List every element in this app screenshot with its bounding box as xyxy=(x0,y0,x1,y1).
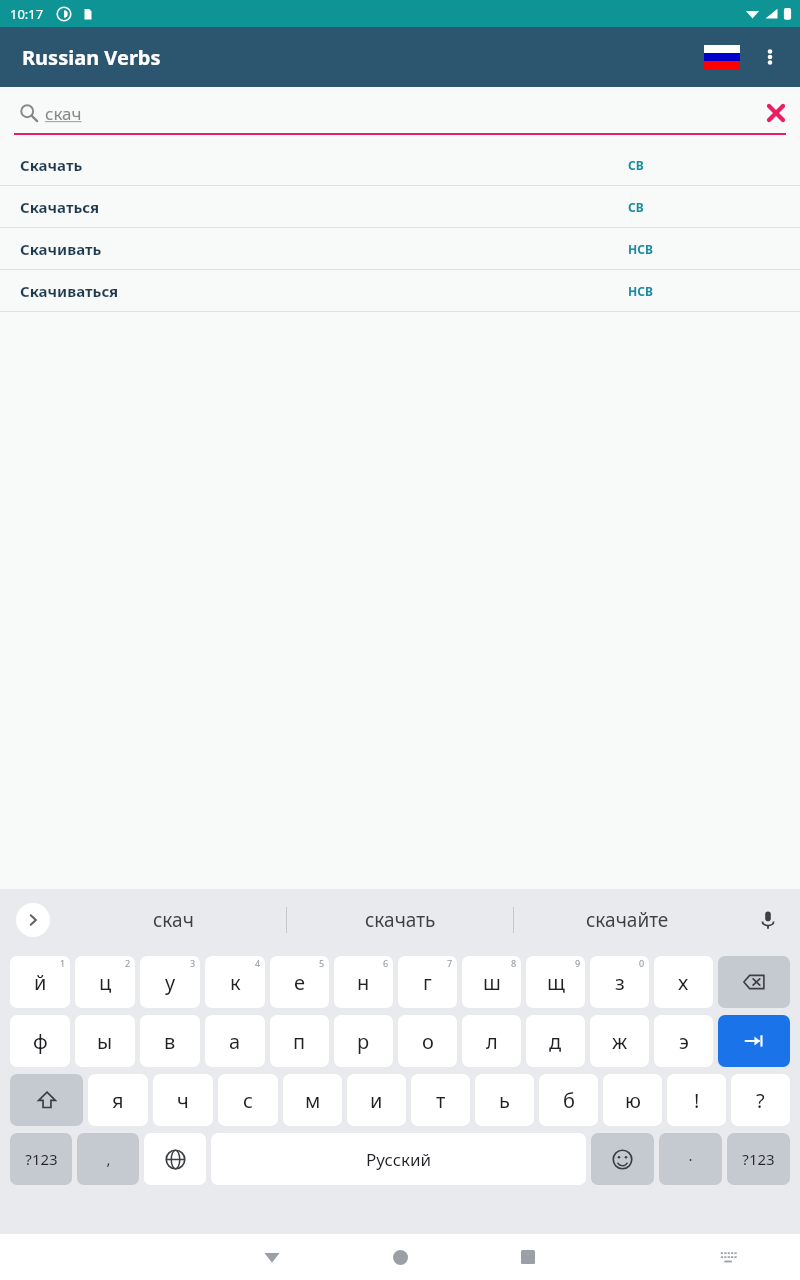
button[interactable]: ?123 xyxy=(10,1133,72,1185)
button[interactable]: т xyxy=(411,1074,470,1126)
button[interactable]: Recent apps xyxy=(504,1234,552,1280)
button[interactable]: н xyxy=(334,956,393,1008)
staticText: б xyxy=(563,1087,575,1114)
staticText: к xyxy=(230,969,241,996)
button[interactable]: с xyxy=(218,1074,278,1126)
staticText: х xyxy=(678,969,689,996)
staticText: н xyxy=(357,969,370,996)
button[interactable]: й xyxy=(10,956,70,1008)
staticText: Russian Verbs xyxy=(22,44,161,71)
staticText: Скачиваться xyxy=(20,281,119,301)
button[interactable]: е xyxy=(270,956,329,1008)
button[interactable]: х xyxy=(654,956,713,1008)
staticText: ?123 xyxy=(742,1149,775,1169)
button[interactable]: Home xyxy=(376,1234,424,1280)
staticText: , xyxy=(106,1149,111,1169)
button[interactable]: э xyxy=(654,1015,713,1067)
staticText: 5 xyxy=(319,957,325,969)
button[interactable]: скач xyxy=(60,889,286,951)
button[interactable]: Voice input xyxy=(746,898,790,942)
button[interactable]: ы xyxy=(75,1015,135,1067)
button[interactable]: ж xyxy=(590,1015,649,1067)
staticText: ь xyxy=(499,1087,510,1114)
staticText: СВ xyxy=(628,199,644,215)
staticText: ы xyxy=(97,1028,113,1055)
staticText: · xyxy=(688,1149,693,1169)
staticText: ф xyxy=(33,1028,48,1055)
staticText: 0 xyxy=(639,957,645,969)
staticText: Скачаться xyxy=(20,197,100,217)
staticText: НСВ xyxy=(628,283,653,299)
button[interactable]: Expand toolbar xyxy=(16,903,50,937)
button[interactable]: г xyxy=(398,956,457,1008)
button[interactable]: Backspace xyxy=(718,956,790,1008)
staticText: л xyxy=(486,1028,498,1055)
staticText: а xyxy=(229,1028,241,1055)
button[interactable]: б xyxy=(539,1074,598,1126)
staticText: э xyxy=(679,1028,689,1055)
button[interactable]: ю xyxy=(603,1074,662,1126)
staticText: и xyxy=(370,1087,383,1114)
button[interactable]: ш xyxy=(462,956,521,1008)
staticText: СВ xyxy=(628,157,644,173)
staticText: г xyxy=(423,969,432,996)
staticText: 2 xyxy=(125,957,131,969)
staticText: скач xyxy=(45,102,82,125)
button[interactable]: Скачать xyxy=(0,144,800,186)
button[interactable]: ? xyxy=(731,1074,790,1126)
button[interactable]: Скачаться xyxy=(0,186,800,228)
button[interactable]: Emoji xyxy=(591,1133,654,1185)
button[interactable]: Next xyxy=(718,1015,790,1067)
button[interactable]: · xyxy=(659,1133,722,1185)
button[interactable]: ь xyxy=(475,1074,534,1126)
staticText: 7 xyxy=(447,957,453,969)
button[interactable]: ?123 xyxy=(727,1133,790,1185)
staticText: щ xyxy=(547,969,565,996)
staticText: в xyxy=(164,1028,176,1055)
button[interactable]: Back xyxy=(248,1234,296,1280)
button[interactable]: я xyxy=(88,1074,148,1126)
button[interactable]: а xyxy=(205,1015,265,1067)
button[interactable]: з xyxy=(590,956,649,1008)
staticText: й xyxy=(34,969,47,996)
button[interactable]: п xyxy=(270,1015,329,1067)
button[interactable]: ч xyxy=(153,1074,213,1126)
button[interactable]: м xyxy=(283,1074,342,1126)
button[interactable]: Русский xyxy=(211,1133,586,1185)
staticText: д xyxy=(549,1028,562,1055)
staticText: р xyxy=(357,1028,370,1055)
button[interactable]: Change keyboard language xyxy=(144,1133,206,1185)
button[interactable]: о xyxy=(398,1015,457,1067)
staticText: у xyxy=(165,969,176,996)
button[interactable]: д xyxy=(526,1015,585,1067)
button[interactable]: ! xyxy=(667,1074,726,1126)
button[interactable]: Clear search xyxy=(752,89,800,137)
staticText: 3 xyxy=(190,957,196,969)
button[interactable]: Switch keyboard xyxy=(704,1234,752,1280)
other: Search xyxy=(20,104,38,122)
button[interactable]: Shift xyxy=(10,1074,83,1126)
button[interactable]: в xyxy=(140,1015,200,1067)
button[interactable]: щ xyxy=(526,956,585,1008)
button[interactable]: и xyxy=(347,1074,406,1126)
staticText: т xyxy=(436,1087,446,1114)
button[interactable]: л xyxy=(462,1015,521,1067)
button[interactable]: Скачивать xyxy=(0,228,800,270)
staticText: 6 xyxy=(383,957,389,969)
button[interactable]: скачайте xyxy=(514,889,740,951)
staticText: 4 xyxy=(255,957,261,969)
button[interactable]: у xyxy=(140,956,200,1008)
button[interactable]: , xyxy=(77,1133,139,1185)
button[interactable]: ф xyxy=(10,1015,70,1067)
button[interactable]: ц xyxy=(75,956,135,1008)
button[interactable]: More options xyxy=(746,33,794,81)
staticText: Русский xyxy=(366,1148,432,1171)
staticText: о xyxy=(422,1028,434,1055)
button[interactable]: Change language xyxy=(698,33,746,81)
button[interactable]: р xyxy=(334,1015,393,1067)
button[interactable]: Скачиваться xyxy=(0,270,800,312)
button[interactable]: скачать xyxy=(287,889,513,951)
button[interactable]: к xyxy=(205,956,265,1008)
staticText: п xyxy=(293,1028,306,1055)
staticText: 10:17 xyxy=(10,5,44,23)
